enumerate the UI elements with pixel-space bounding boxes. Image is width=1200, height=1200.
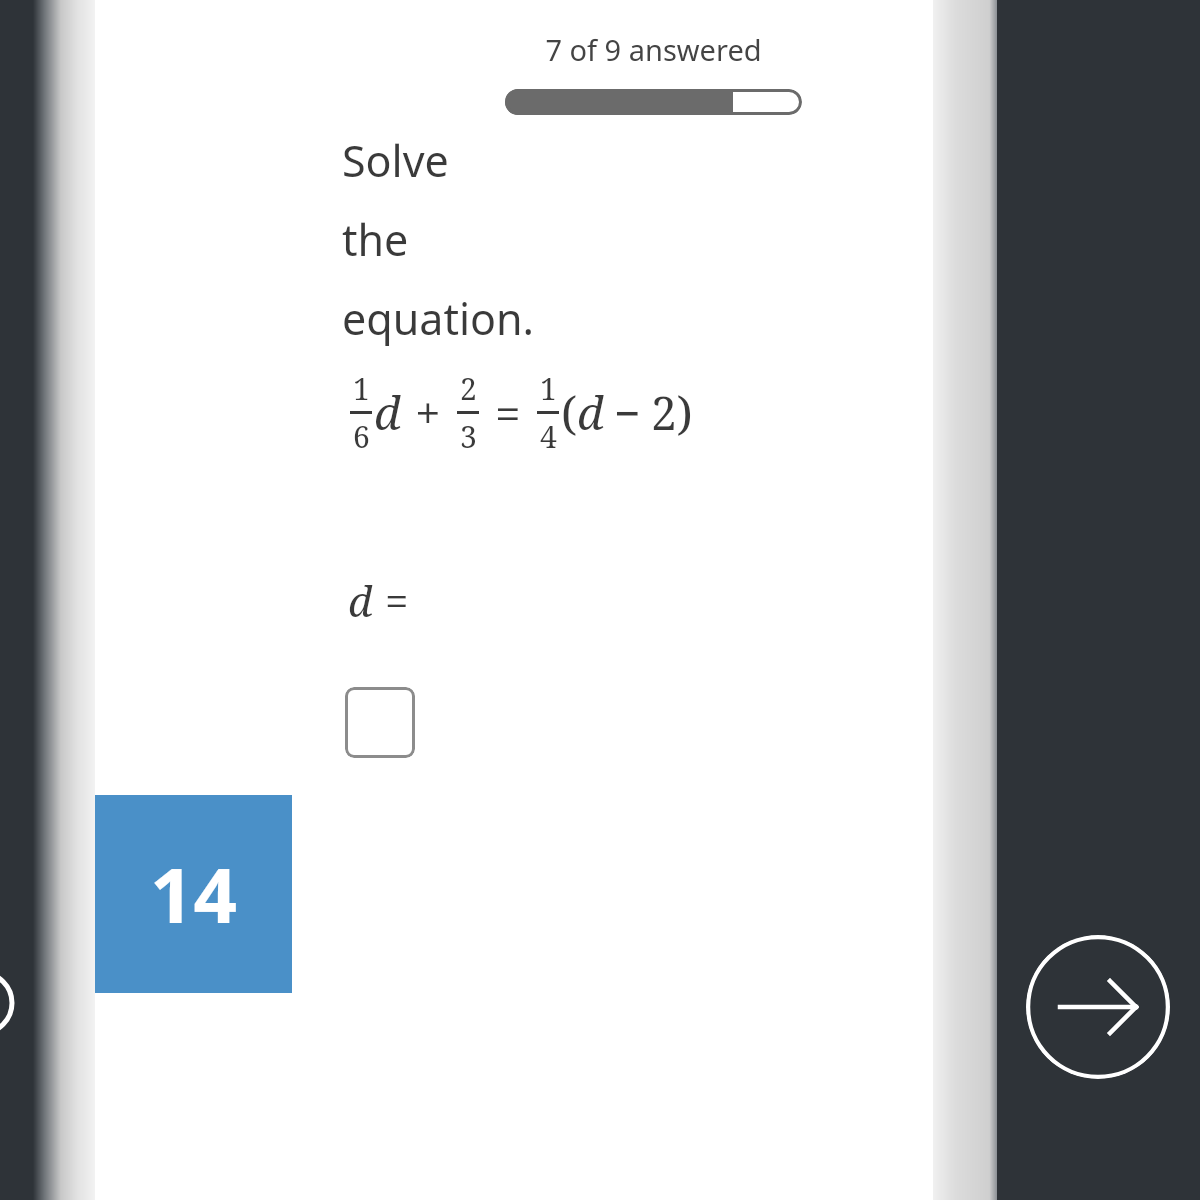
staticText: the: [342, 210, 409, 269]
staticText: d: [348, 572, 373, 629]
staticText: 1: [353, 368, 370, 409]
staticText: 2: [460, 368, 477, 409]
button[interactable]: Answer input: [345, 687, 415, 758]
staticText: Solve: [342, 131, 449, 190]
staticText: (: [561, 381, 577, 444]
staticText: 6: [353, 416, 370, 457]
staticText: d: [374, 381, 401, 444]
staticText: 14: [150, 842, 237, 946]
staticText: 3: [460, 416, 477, 457]
staticText: d: [577, 381, 604, 444]
button[interactable]: Next: [1026, 935, 1170, 1079]
button[interactable]: 14: [95, 795, 292, 993]
staticText: 7 of 9 answered: [505, 30, 802, 69]
staticText: 1: [540, 368, 557, 409]
staticText: 2): [651, 381, 693, 444]
staticText: =: [385, 572, 409, 629]
staticText: −: [614, 381, 641, 444]
staticText: equation.: [342, 289, 535, 348]
staticText: 4: [540, 416, 557, 457]
staticText: +: [415, 381, 441, 444]
staticText: =: [495, 381, 521, 444]
